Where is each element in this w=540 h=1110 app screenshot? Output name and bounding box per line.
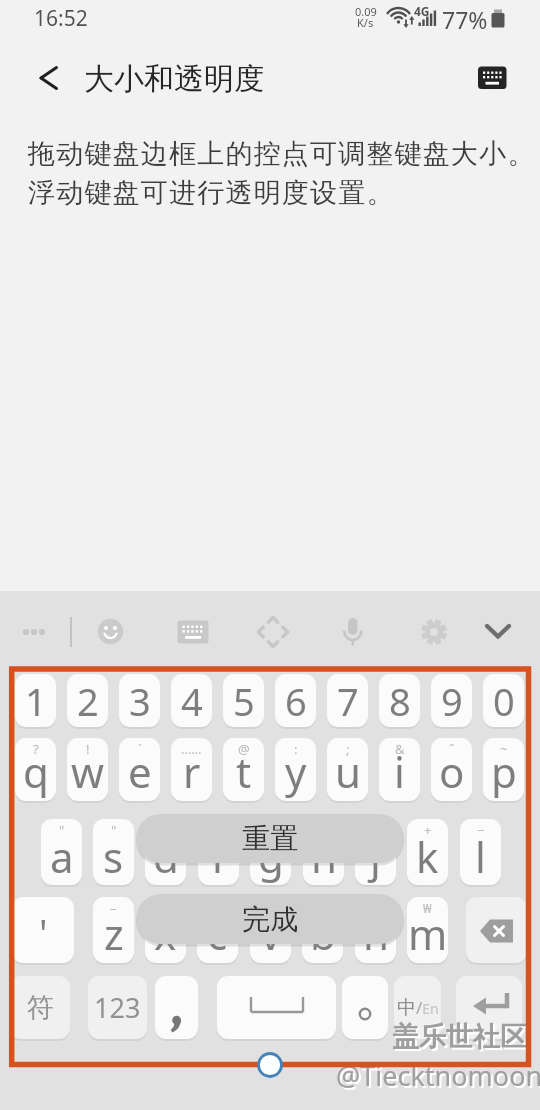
staticText: q <box>23 743 49 800</box>
button[interactable]: 0 <box>483 674 524 727</box>
button[interactable]: m <box>407 897 448 963</box>
button[interactable]: 3 <box>119 674 160 727</box>
staticText: 9 <box>441 675 463 727</box>
staticText: ` <box>138 740 142 758</box>
button[interactable]: u <box>327 738 368 801</box>
staticText: l <box>475 828 486 885</box>
staticText: m <box>408 905 448 962</box>
button[interactable]: e <box>119 738 160 801</box>
staticText: 符 <box>27 991 54 1025</box>
button[interactable]: z <box>93 897 134 963</box>
button[interactable]: o <box>431 738 472 801</box>
staticText: c <box>207 905 228 962</box>
button[interactable]: 9 <box>431 674 472 727</box>
staticText: a <box>50 828 74 885</box>
staticText: 拖动键盘边框上的控点可调整键盘大小。 <box>28 137 536 171</box>
button[interactable] <box>342 976 388 1039</box>
button[interactable]: w <box>67 738 108 801</box>
staticText: ˆ <box>449 740 455 758</box>
staticText: 7 <box>337 675 359 727</box>
staticText: " <box>111 821 117 839</box>
staticText: h <box>311 828 337 885</box>
staticText: 5 <box>233 675 255 727</box>
button[interactable]: 中/En <box>394 976 441 1039</box>
button[interactable]: 8 <box>379 674 420 727</box>
staticText: o <box>439 743 465 800</box>
button[interactable]: v <box>250 897 291 963</box>
button[interactable]: f <box>198 819 239 885</box>
button[interactable]: s <box>93 819 134 885</box>
button[interactable]: 4 <box>171 674 212 727</box>
staticText: 8 <box>389 675 411 727</box>
staticText: − <box>477 821 485 839</box>
button[interactable]: i <box>379 738 420 801</box>
button[interactable]: j <box>355 819 396 885</box>
button[interactable]: l <box>460 819 501 885</box>
button[interactable]: p <box>483 738 524 801</box>
staticText: @ <box>238 740 250 758</box>
staticText: + <box>424 821 432 839</box>
button[interactable] <box>217 976 336 1039</box>
staticText: 1 <box>25 675 47 727</box>
button[interactable] <box>470 58 514 98</box>
button[interactable] <box>456 976 522 1039</box>
staticText: 2 <box>77 675 99 727</box>
staticText: 16:52 <box>34 4 88 33</box>
button[interactable]: 2 <box>67 674 108 727</box>
button[interactable]: 5 <box>223 674 264 727</box>
staticText: K/s <box>357 15 374 30</box>
button[interactable]: 123 <box>88 976 147 1039</box>
staticText: 77% <box>442 4 488 35</box>
staticText: w <box>71 743 105 800</box>
button[interactable] <box>466 897 527 963</box>
staticText: s <box>103 828 124 885</box>
button[interactable]: t <box>223 738 264 801</box>
staticText: 4 <box>181 675 203 727</box>
button[interactable]: x <box>145 897 186 963</box>
button[interactable]: c <box>197 897 238 963</box>
staticText: t <box>236 743 252 800</box>
staticText: p <box>491 743 517 800</box>
staticText: 4G <box>414 3 430 19</box>
staticText: ' <box>39 906 48 958</box>
button[interactable]: 6 <box>275 674 316 727</box>
button[interactable]: 7 <box>327 674 368 727</box>
staticText: d <box>153 828 179 885</box>
button[interactable] <box>155 976 198 1039</box>
button[interactable]: b <box>302 897 343 963</box>
button[interactable]: y <box>275 738 316 801</box>
staticText: 6 <box>285 675 307 727</box>
button[interactable] <box>30 60 66 96</box>
staticText: y <box>285 743 307 800</box>
staticText: v <box>260 905 282 962</box>
staticText: e <box>128 743 152 800</box>
button[interactable]: ' <box>12 897 74 963</box>
button[interactable]: 符 <box>10 976 70 1039</box>
staticText: – <box>110 899 117 917</box>
staticText: ₩ <box>423 899 432 917</box>
staticText: ? <box>33 740 39 758</box>
staticText: b <box>310 905 336 962</box>
button[interactable]: k <box>407 819 448 885</box>
button[interactable]: r <box>171 738 212 801</box>
staticText: f <box>211 828 226 885</box>
button[interactable]: d <box>145 819 186 885</box>
staticText: " <box>59 821 65 839</box>
button[interactable]: q <box>15 738 56 801</box>
button[interactable]: 重置 <box>136 814 404 863</box>
button[interactable]: n <box>355 897 396 963</box>
staticText: n <box>363 905 389 962</box>
button[interactable]: a <box>41 819 82 885</box>
staticText: 0 <box>493 675 515 727</box>
staticText: 浮动键盘可进行透明度设置。 <box>28 176 395 210</box>
staticText: ~ <box>500 740 508 758</box>
button[interactable]: h <box>303 819 344 885</box>
staticText: r <box>183 743 201 800</box>
staticText: i <box>394 743 405 800</box>
staticText: k <box>416 828 439 885</box>
button[interactable]: 完成 <box>136 894 404 944</box>
button[interactable]: g <box>250 819 291 885</box>
staticText: : <box>294 740 298 758</box>
button[interactable]: 1 <box>15 674 56 727</box>
staticText: …… <box>181 740 202 758</box>
